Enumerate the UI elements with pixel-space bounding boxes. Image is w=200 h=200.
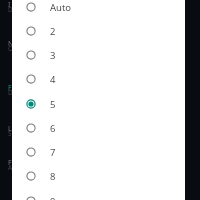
staticText: 7 (50, 146, 56, 159)
staticText: Show all (8, 129, 13, 138)
staticText: Font size (8, 158, 13, 168)
staticText: Auto (8, 163, 13, 172)
staticText: Off / Auto (8, 44, 13, 53)
staticText: 9 (50, 195, 56, 200)
other: Not selected (24, 24, 38, 38)
other: Not selected (24, 121, 38, 135)
other: Not selected (24, 72, 38, 86)
button[interactable]: Night Light (8, 39, 13, 49)
button[interactable]: Not selected (12, 43, 185, 67)
staticText: Auto (50, 1, 72, 14)
other: Not selected (24, 0, 38, 14)
staticText: Icon size (8, 0, 13, 10)
button[interactable]: Not selected (12, 67, 185, 91)
other: Not selected (24, 145, 38, 159)
other: Not selected (24, 169, 38, 183)
other: Not selected (24, 48, 38, 62)
button[interactable]: Font size (8, 158, 13, 168)
button[interactable]: Lock screen (8, 124, 13, 134)
button[interactable]: Selected (12, 92, 185, 116)
staticText: 6 (50, 122, 56, 135)
button[interactable]: Not selected (12, 164, 185, 188)
staticText: 4 (50, 73, 56, 86)
button[interactable]: Icon size (8, 0, 13, 10)
staticText: Night Light (8, 39, 13, 49)
button[interactable]: Not selected (12, 0, 185, 19)
staticText: 5 (50, 98, 56, 111)
button[interactable]: Not selected (12, 19, 185, 43)
staticText: 3 (50, 49, 56, 62)
staticText: Default (8, 88, 13, 97)
staticText: Lock screen (8, 124, 13, 134)
staticText: Font size (8, 83, 13, 93)
button[interactable]: Font size (8, 83, 13, 93)
staticText: 8 (50, 170, 56, 183)
button[interactable]: Not selected (12, 116, 185, 140)
other: Not selected (24, 194, 38, 200)
button[interactable]: Not selected (12, 189, 185, 200)
staticText: Default (8, 5, 13, 14)
staticText: 2 (50, 25, 56, 38)
other: Selected (24, 97, 38, 111)
button[interactable]: Not selected (12, 140, 185, 164)
